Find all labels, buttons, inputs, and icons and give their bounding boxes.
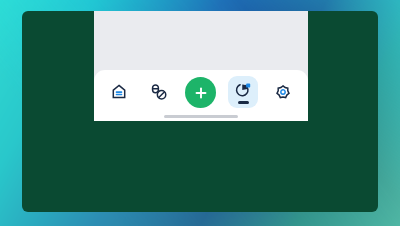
button[interactable]: Home: [104, 77, 134, 107]
button[interactable]: Medications: [144, 77, 174, 107]
button[interactable]: Add: [185, 77, 216, 108]
button[interactable]: Settings: [268, 77, 298, 107]
button[interactable]: Reports: [228, 76, 258, 108]
